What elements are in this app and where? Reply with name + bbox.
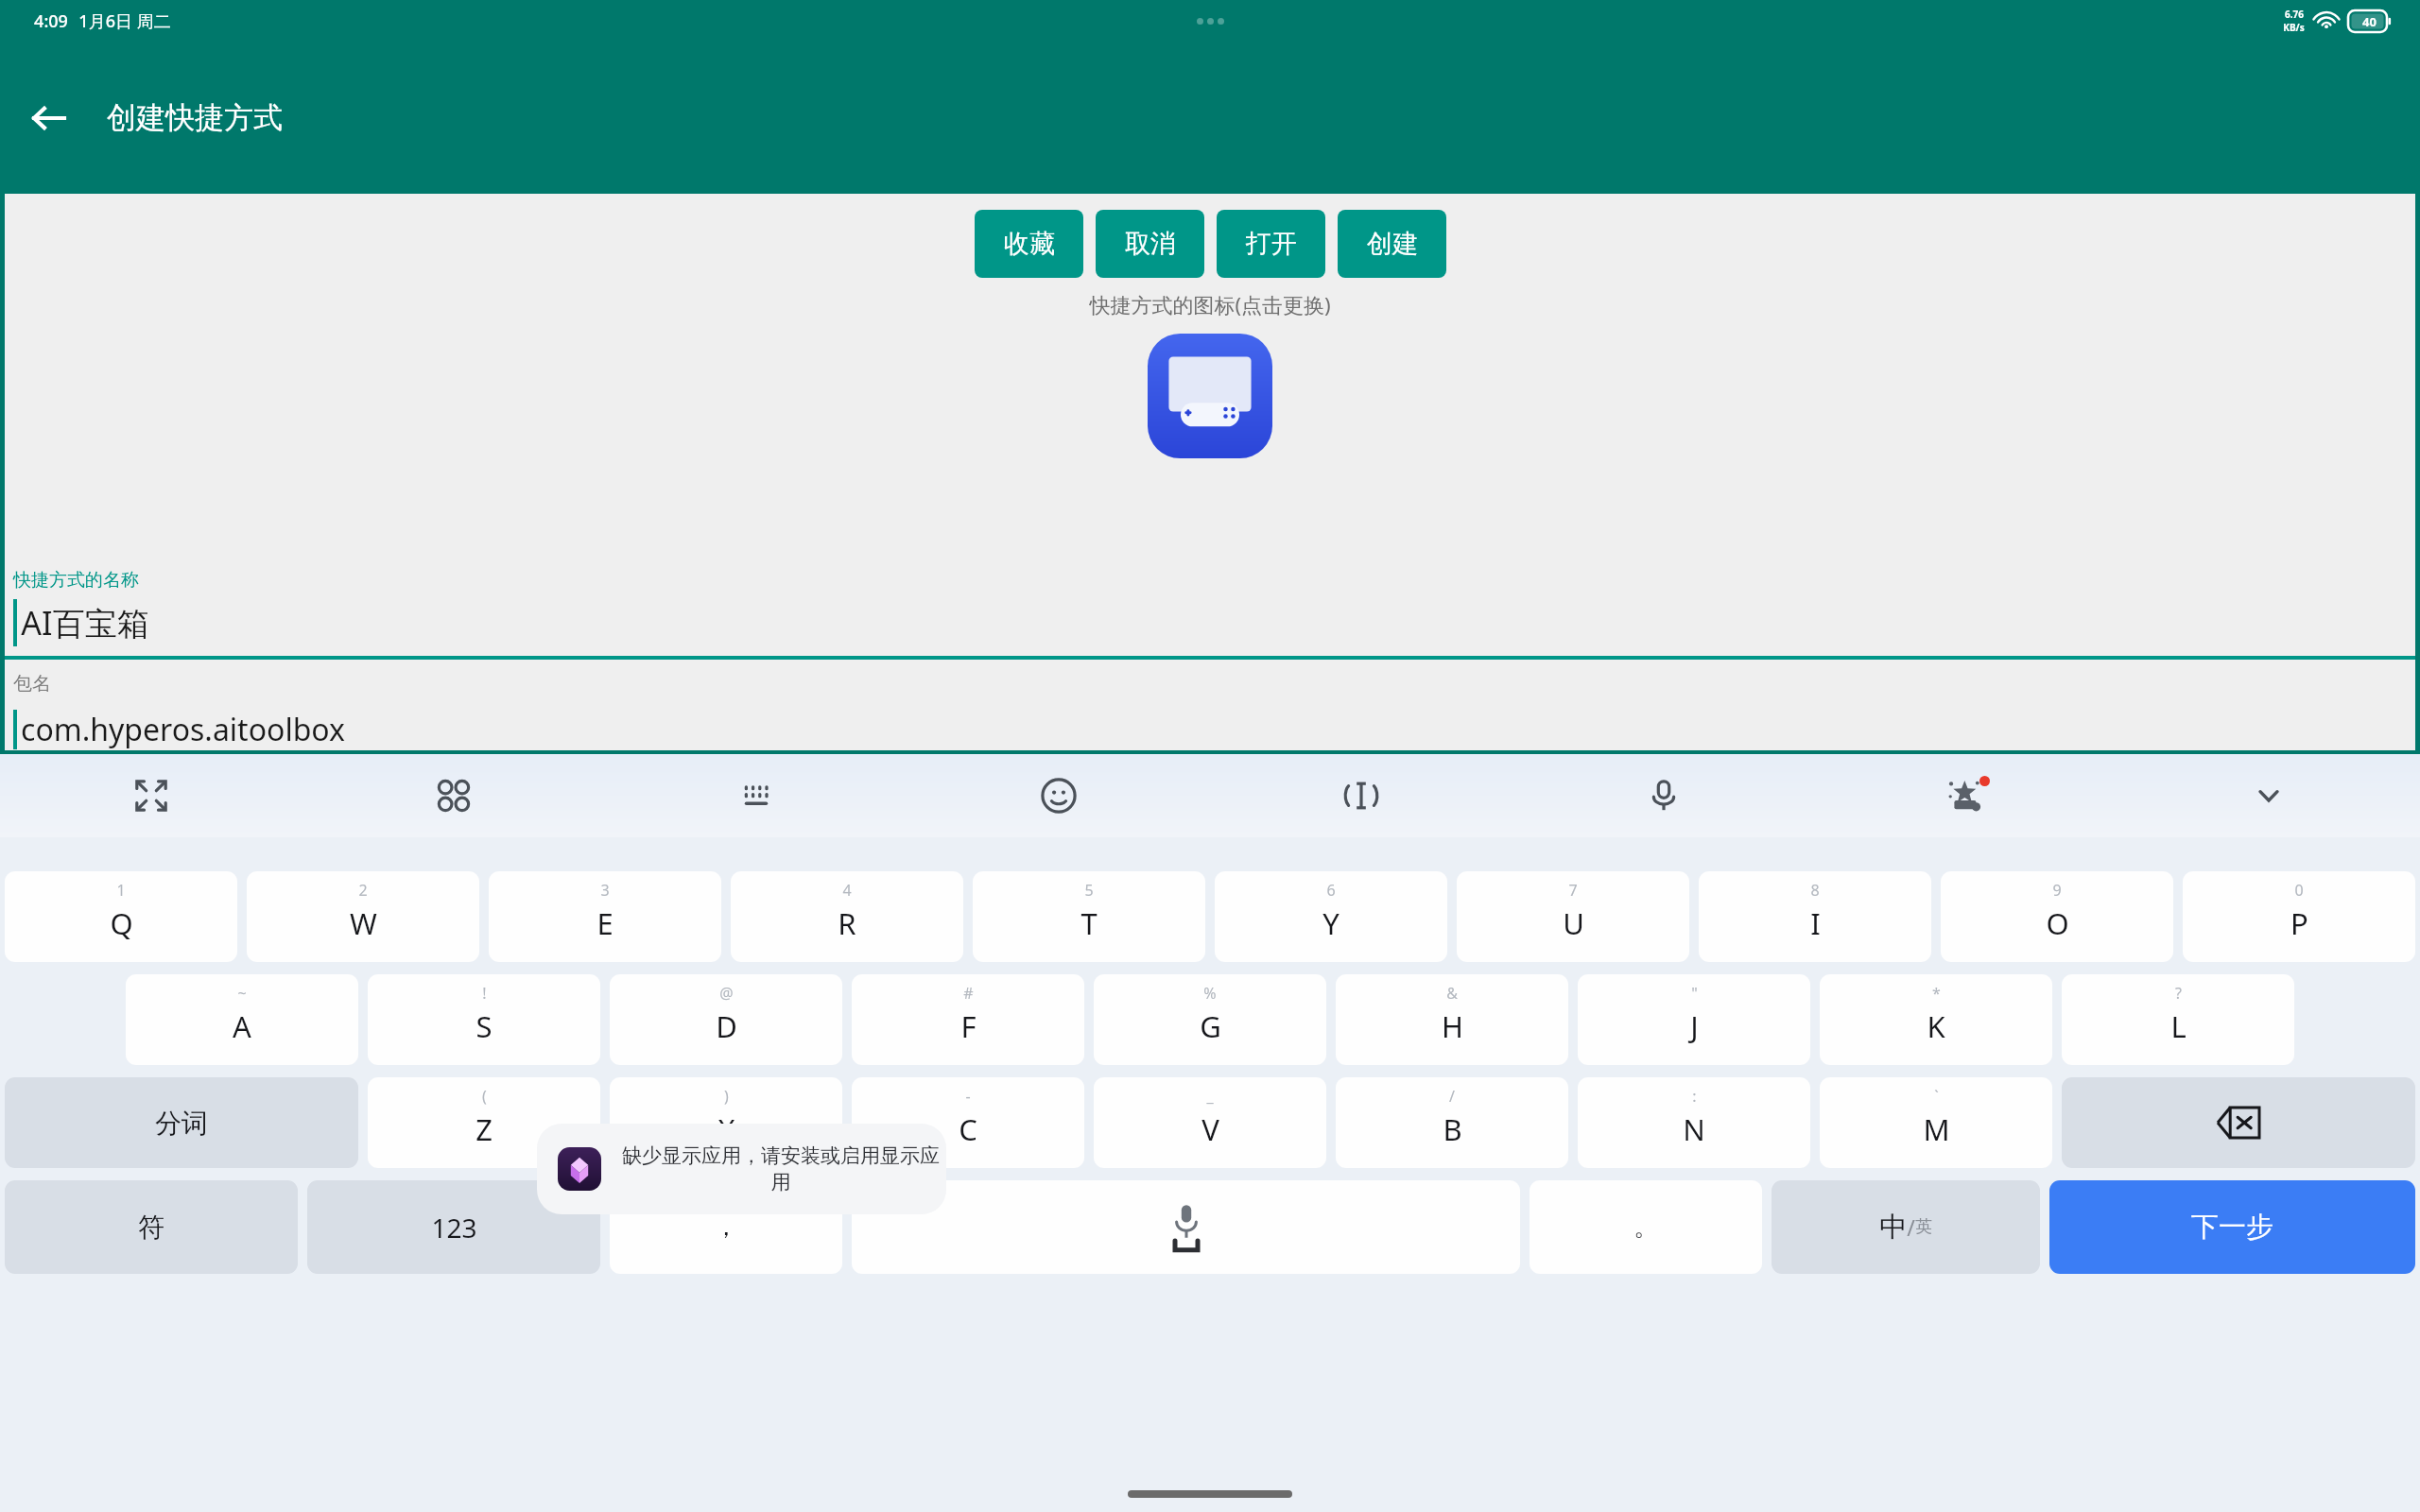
staticText: 123 [431, 1210, 477, 1246]
staticText: V [1201, 1109, 1219, 1149]
button[interactable]: 7 [1457, 871, 1689, 962]
button[interactable]: 语音输入 [1512, 754, 1815, 837]
button[interactable]: 取消 [1096, 210, 1204, 278]
staticText: " [1691, 983, 1698, 1004]
staticText: 40 [2362, 13, 2377, 30]
button[interactable]: 分词 [5, 1077, 358, 1168]
button[interactable]: _ [1094, 1077, 1326, 1168]
staticText: / [1907, 1212, 1915, 1242]
staticText: Q [110, 903, 133, 943]
button[interactable]: 隐藏键盘 [2117, 754, 2420, 837]
staticText: 英 [1915, 1216, 1932, 1238]
button[interactable]: 打开 [1217, 210, 1325, 278]
staticText: @ [719, 983, 734, 1004]
staticText: 3 [600, 880, 610, 901]
staticText: H [1442, 1006, 1463, 1046]
button[interactable]: 8 [1699, 871, 1931, 962]
staticText: 4 [842, 880, 852, 901]
staticText: 取消 [1125, 228, 1176, 260]
button[interactable]: 空格 [852, 1180, 1520, 1274]
button[interactable]: 符 [5, 1180, 298, 1274]
staticText: F [960, 1006, 977, 1046]
button[interactable]: AI 助手 [1815, 754, 2117, 837]
staticText: 9 [2052, 880, 2062, 901]
button[interactable]: 键盘设置 [605, 754, 907, 837]
button[interactable]: 2 [247, 871, 479, 962]
staticText: * [1932, 983, 1941, 1004]
button[interactable]: 3 [489, 871, 721, 962]
button[interactable]: 键盘布局 [302, 754, 605, 837]
button[interactable]: * [1820, 974, 2052, 1065]
staticText: T [1080, 903, 1098, 943]
button[interactable]: % [1094, 974, 1326, 1065]
button[interactable]: 1 [5, 871, 237, 962]
button[interactable]: 下一步 [2049, 1180, 2415, 1274]
button[interactable]: # [852, 974, 1084, 1065]
staticText: 1 [116, 880, 126, 901]
staticText: 符 [138, 1211, 164, 1244]
button[interactable]: 快捷方式图标 [1148, 334, 1272, 458]
staticText: ` [1934, 1086, 1939, 1107]
button[interactable]: ， [610, 1180, 842, 1274]
staticText: 8 [1810, 880, 1820, 901]
staticText: R [838, 903, 856, 943]
staticText: I [1810, 903, 1821, 943]
button[interactable]: 4 [731, 871, 963, 962]
button[interactable]: 收起键盘 [0, 754, 302, 837]
staticText: 5 [1084, 880, 1094, 901]
button[interactable]: ~ [126, 974, 358, 1065]
button[interactable]: - [852, 1077, 1084, 1168]
staticText: S [475, 1006, 493, 1046]
staticText: K [1927, 1006, 1945, 1046]
button[interactable]: ? [2062, 974, 2294, 1065]
staticText: Y [1322, 903, 1340, 943]
button[interactable]: @ [610, 974, 842, 1065]
staticText: : [1692, 1086, 1697, 1107]
staticText: 收藏 [1004, 228, 1055, 260]
staticText: Z [475, 1109, 493, 1149]
button[interactable]: : [1578, 1077, 1810, 1168]
staticText: C [959, 1109, 977, 1149]
staticText: AI百宝箱 [21, 601, 149, 644]
staticText: 分词 [155, 1107, 208, 1140]
staticText: 创建快捷方式 [107, 99, 283, 136]
staticText: D [716, 1006, 737, 1046]
button[interactable]: ) [610, 1077, 842, 1168]
button[interactable]: 0 [2183, 871, 2415, 962]
staticText: G [1200, 1006, 1221, 1046]
button[interactable]: 退格 [2062, 1077, 2415, 1168]
staticText: _ [1206, 1086, 1214, 1107]
button[interactable]: 5 [973, 871, 1205, 962]
button[interactable]: ! [368, 974, 600, 1065]
button[interactable]: 9 [1941, 871, 2173, 962]
button[interactable]: 表情 [907, 754, 1210, 837]
button[interactable]: / [1336, 1077, 1568, 1168]
staticText: KB/s [2283, 21, 2305, 34]
staticText: 2 [358, 880, 368, 901]
button[interactable]: 光标移动 [1210, 754, 1512, 837]
button[interactable]: 缺少显示应用，请安装或启用显示应用 [537, 1124, 946, 1214]
staticText: 打开 [1246, 228, 1297, 260]
staticText: J [1690, 1006, 1699, 1046]
staticText: # [963, 983, 974, 1004]
button[interactable]: 创建 [1338, 210, 1446, 278]
staticText: ! [482, 983, 487, 1004]
button[interactable]: 123 [307, 1180, 600, 1274]
staticText: 6.76 [2285, 8, 2304, 21]
button[interactable]: ` [1820, 1077, 2052, 1168]
button[interactable]: ( [368, 1077, 600, 1168]
button[interactable]: " [1578, 974, 1810, 1065]
staticText: ( [482, 1086, 487, 1107]
button[interactable]: & [1336, 974, 1568, 1065]
staticText: 缺少显示应用，请安装或启用显示应用 [615, 1143, 946, 1194]
staticText: 4:09 [34, 9, 68, 33]
button[interactable]: 6 [1215, 871, 1447, 962]
button[interactable]: 收藏 [975, 210, 1083, 278]
button[interactable]: 中 [1772, 1180, 2040, 1274]
staticText: com.hyperos.aitoolbox [21, 709, 345, 750]
staticText: 中 [1879, 1210, 1907, 1245]
button[interactable]: 返回 [21, 91, 76, 146]
staticText: P [2290, 903, 2308, 943]
staticText: B [1443, 1109, 1462, 1149]
button[interactable]: 。 [1530, 1180, 1762, 1274]
